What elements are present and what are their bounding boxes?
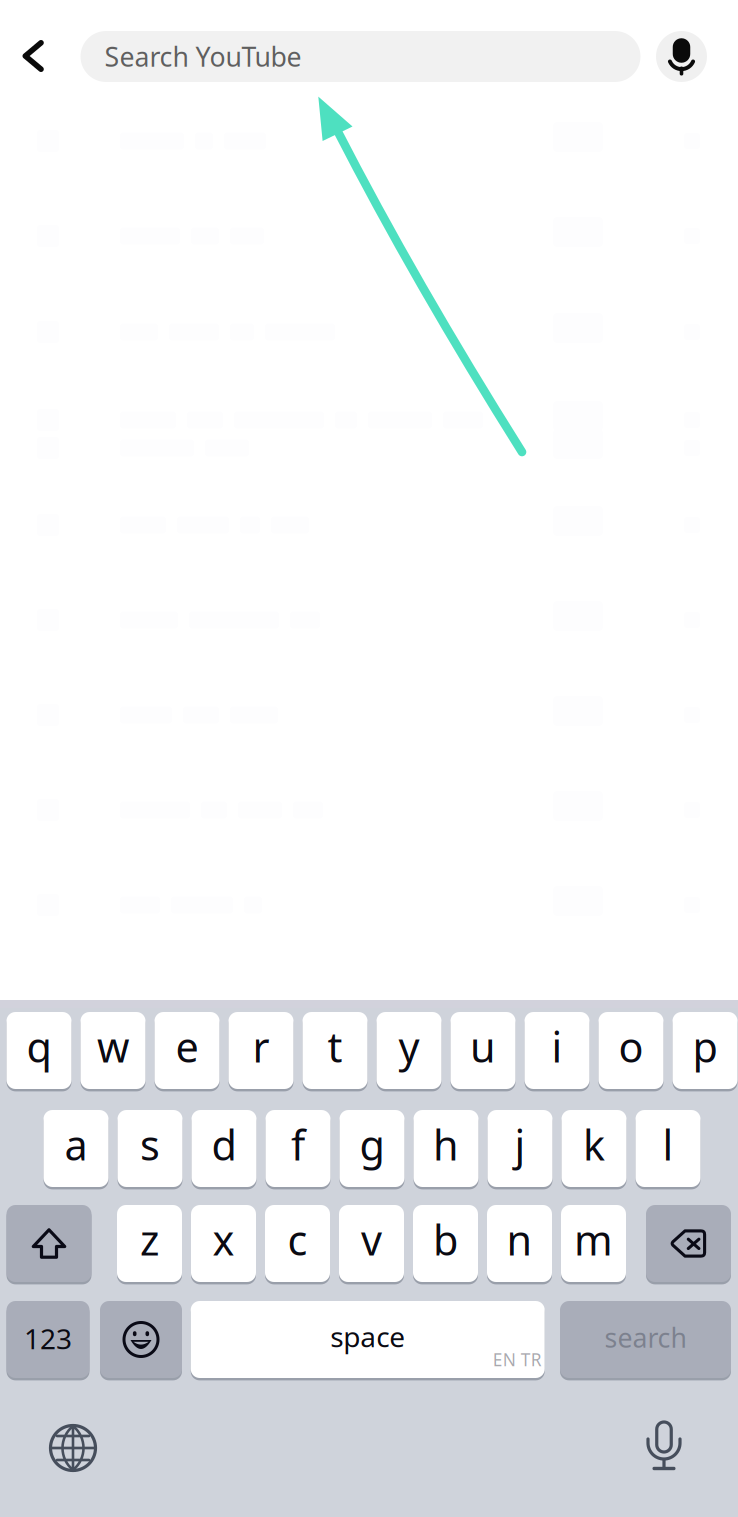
staticText: c	[287, 1212, 307, 1267]
staticText: r	[252, 1019, 269, 1074]
staticText: u	[470, 1019, 496, 1074]
staticText: k	[583, 1117, 605, 1172]
button[interactable]: n	[487, 1203, 552, 1283]
staticText: s	[140, 1117, 160, 1172]
staticText: EN TR	[493, 1348, 542, 1371]
staticText: y	[398, 1019, 419, 1074]
button[interactable]: e	[154, 1010, 219, 1090]
button[interactable]: h	[413, 1108, 478, 1188]
button[interactable]: q	[6, 1010, 71, 1090]
button[interactable]: w	[80, 1010, 145, 1090]
staticText: w	[97, 1019, 129, 1074]
button[interactable]: m	[561, 1203, 626, 1283]
button[interactable]: Next keyboard	[50, 1425, 96, 1471]
button[interactable]: u	[450, 1010, 515, 1090]
staticText: e	[175, 1019, 198, 1074]
button[interactable]: g	[339, 1108, 404, 1188]
button[interactable]: k	[561, 1108, 626, 1188]
button[interactable]: x	[191, 1203, 256, 1283]
button[interactable]: Back	[2, 24, 64, 88]
button[interactable]: 123	[6, 1299, 89, 1379]
staticText: t	[327, 1019, 342, 1074]
staticText: z	[140, 1212, 159, 1267]
button[interactable]: l	[635, 1108, 700, 1188]
staticText: b	[433, 1212, 458, 1267]
staticText: x	[212, 1212, 234, 1267]
button[interactable]: b	[413, 1203, 478, 1283]
staticText: o	[618, 1019, 643, 1074]
staticText: search	[604, 1320, 686, 1355]
staticText: q	[26, 1019, 51, 1074]
staticText: 123	[24, 1320, 72, 1357]
button[interactable]: Emoji	[100, 1299, 182, 1379]
button[interactable]: Delete	[646, 1203, 731, 1283]
button[interactable]: Dictate	[647, 1421, 681, 1471]
staticText: l	[662, 1117, 673, 1172]
staticText: i	[551, 1019, 562, 1074]
button[interactable]: r	[228, 1010, 293, 1090]
staticText: g	[359, 1117, 384, 1172]
button[interactable]: space	[191, 1299, 545, 1379]
button[interactable]: j	[487, 1108, 552, 1188]
staticText: h	[433, 1117, 459, 1172]
staticText: a	[64, 1117, 87, 1172]
button[interactable]: f	[265, 1108, 330, 1188]
button[interactable]: p	[672, 1010, 737, 1090]
button[interactable]: a	[43, 1108, 108, 1188]
staticText: n	[506, 1212, 532, 1267]
button[interactable]: i	[524, 1010, 589, 1090]
staticText: j	[514, 1117, 525, 1172]
staticText: v	[361, 1212, 382, 1267]
button[interactable]: z	[117, 1203, 182, 1283]
staticText: Search YouTube	[104, 39, 301, 74]
staticText: p	[692, 1019, 717, 1074]
button[interactable]: v	[339, 1203, 404, 1283]
button[interactable]: s	[117, 1108, 182, 1188]
button[interactable]: d	[191, 1108, 256, 1188]
staticText: f	[291, 1117, 305, 1172]
button[interactable]: Shift	[6, 1203, 91, 1283]
button[interactable]: Voice search	[655, 30, 707, 82]
staticText: space	[330, 1318, 405, 1355]
staticText: d	[211, 1117, 236, 1172]
button[interactable]: y	[376, 1010, 441, 1090]
button[interactable]: Search YouTube	[80, 31, 640, 82]
button[interactable]: t	[302, 1010, 367, 1090]
button[interactable]: search	[560, 1299, 731, 1379]
staticText: m	[574, 1212, 613, 1267]
button[interactable]: o	[598, 1010, 663, 1090]
button[interactable]: c	[265, 1203, 330, 1283]
